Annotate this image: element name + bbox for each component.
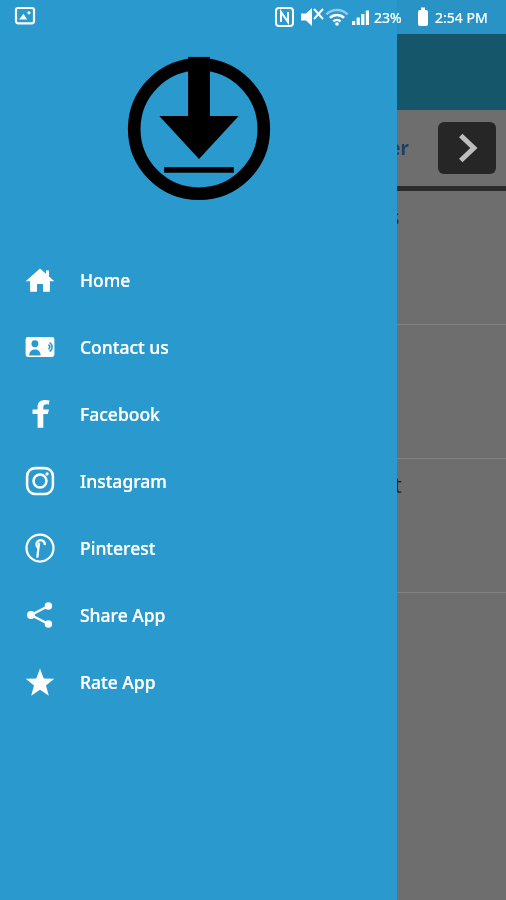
button[interactable]: Ornament [0,459,506,592]
staticText: Rate App [80,670,156,694]
button[interactable]: Pine tree [0,325,506,458]
staticText: Share App [80,603,166,627]
staticText: Facebook [80,402,160,426]
staticText: 2:54 PM [435,8,488,27]
button[interactable]: Instagram [0,447,397,514]
button[interactable]: Rate App [0,648,397,715]
staticText: Chapter [333,135,410,161]
staticText: Ornament [300,471,402,500]
staticText: 23% [374,8,402,27]
staticText: Instagram [80,469,167,493]
button[interactable]: Home [0,246,397,313]
button[interactable]: Plans [0,593,506,726]
staticText: Contact us [80,335,169,359]
staticText: Christmas [300,203,400,232]
staticText: Pinterest [80,536,156,560]
button[interactable]: Pinterest [0,514,397,581]
button[interactable]: Christmas [0,191,506,324]
button[interactable]: Contact us [0,313,397,380]
button[interactable]: Next [438,122,496,174]
button[interactable]: Share App [0,581,397,648]
button[interactable]: Facebook [0,380,397,447]
staticText: Home [80,268,131,292]
